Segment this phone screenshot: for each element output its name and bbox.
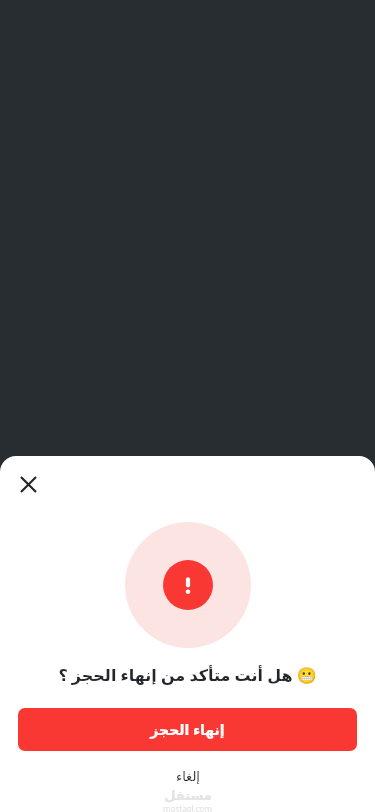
staticText: هل أنت متأكد من إنهاء الحجز ؟ 😬 <box>58 664 317 686</box>
staticText: إلغاء <box>176 769 200 784</box>
button[interactable]: إلغاء <box>0 764 375 788</box>
staticText: مستقل <box>164 788 212 803</box>
staticText: إنهاء الحجز <box>150 720 225 739</box>
button[interactable]: إنهاء الحجز <box>18 708 357 751</box>
button[interactable]: إغلاق <box>12 468 44 500</box>
staticText: mostaql.com <box>163 803 212 812</box>
